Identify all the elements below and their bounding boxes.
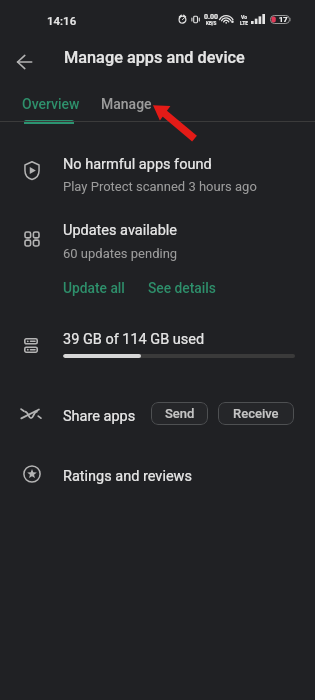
button[interactable]: Receive — [218, 402, 294, 425]
staticText: 0.00 — [204, 13, 219, 21]
staticText: See details — [148, 280, 216, 296]
staticText: KB/S — [206, 21, 217, 26]
button[interactable]: Send — [151, 402, 208, 425]
button[interactable]: Ratings and reviews — [0, 462, 315, 492]
staticText: Play Protect scanned 3 hours ago — [63, 179, 257, 194]
staticText: Updates available — [63, 222, 178, 239]
staticText: Ratings and reviews — [63, 468, 192, 485]
staticText: 39 GB of 114 GB used — [63, 331, 205, 348]
staticText: Receive — [233, 406, 279, 421]
staticText: Vo — [241, 14, 247, 20]
button[interactable]: 39 GB of 114 GB used — [0, 324, 315, 366]
button[interactable]: No harmful apps found — [0, 148, 315, 194]
staticText: LTE — [240, 20, 249, 26]
staticText: Send — [165, 406, 195, 421]
staticText: Overview — [22, 96, 80, 112]
staticText: Update all — [63, 280, 125, 296]
staticText: No harmful apps found — [63, 156, 212, 173]
staticText: 60 updates pending — [63, 246, 178, 261]
button[interactable]: Updates available — [0, 216, 315, 300]
button[interactable]: Manage — [98, 84, 188, 122]
staticText: 17 — [279, 15, 288, 24]
button[interactable]: Back — [2, 41, 47, 82]
button[interactable]: Overview — [0, 84, 98, 122]
staticText: Manage — [101, 96, 152, 112]
button[interactable]: Share apps — [0, 402, 315, 430]
staticText: Manage apps and device — [64, 48, 245, 67]
staticText: Share apps — [63, 408, 136, 425]
button[interactable]: See details — [145, 277, 219, 299]
staticText: 14:16 — [47, 14, 77, 27]
button[interactable]: Update all — [60, 277, 128, 299]
